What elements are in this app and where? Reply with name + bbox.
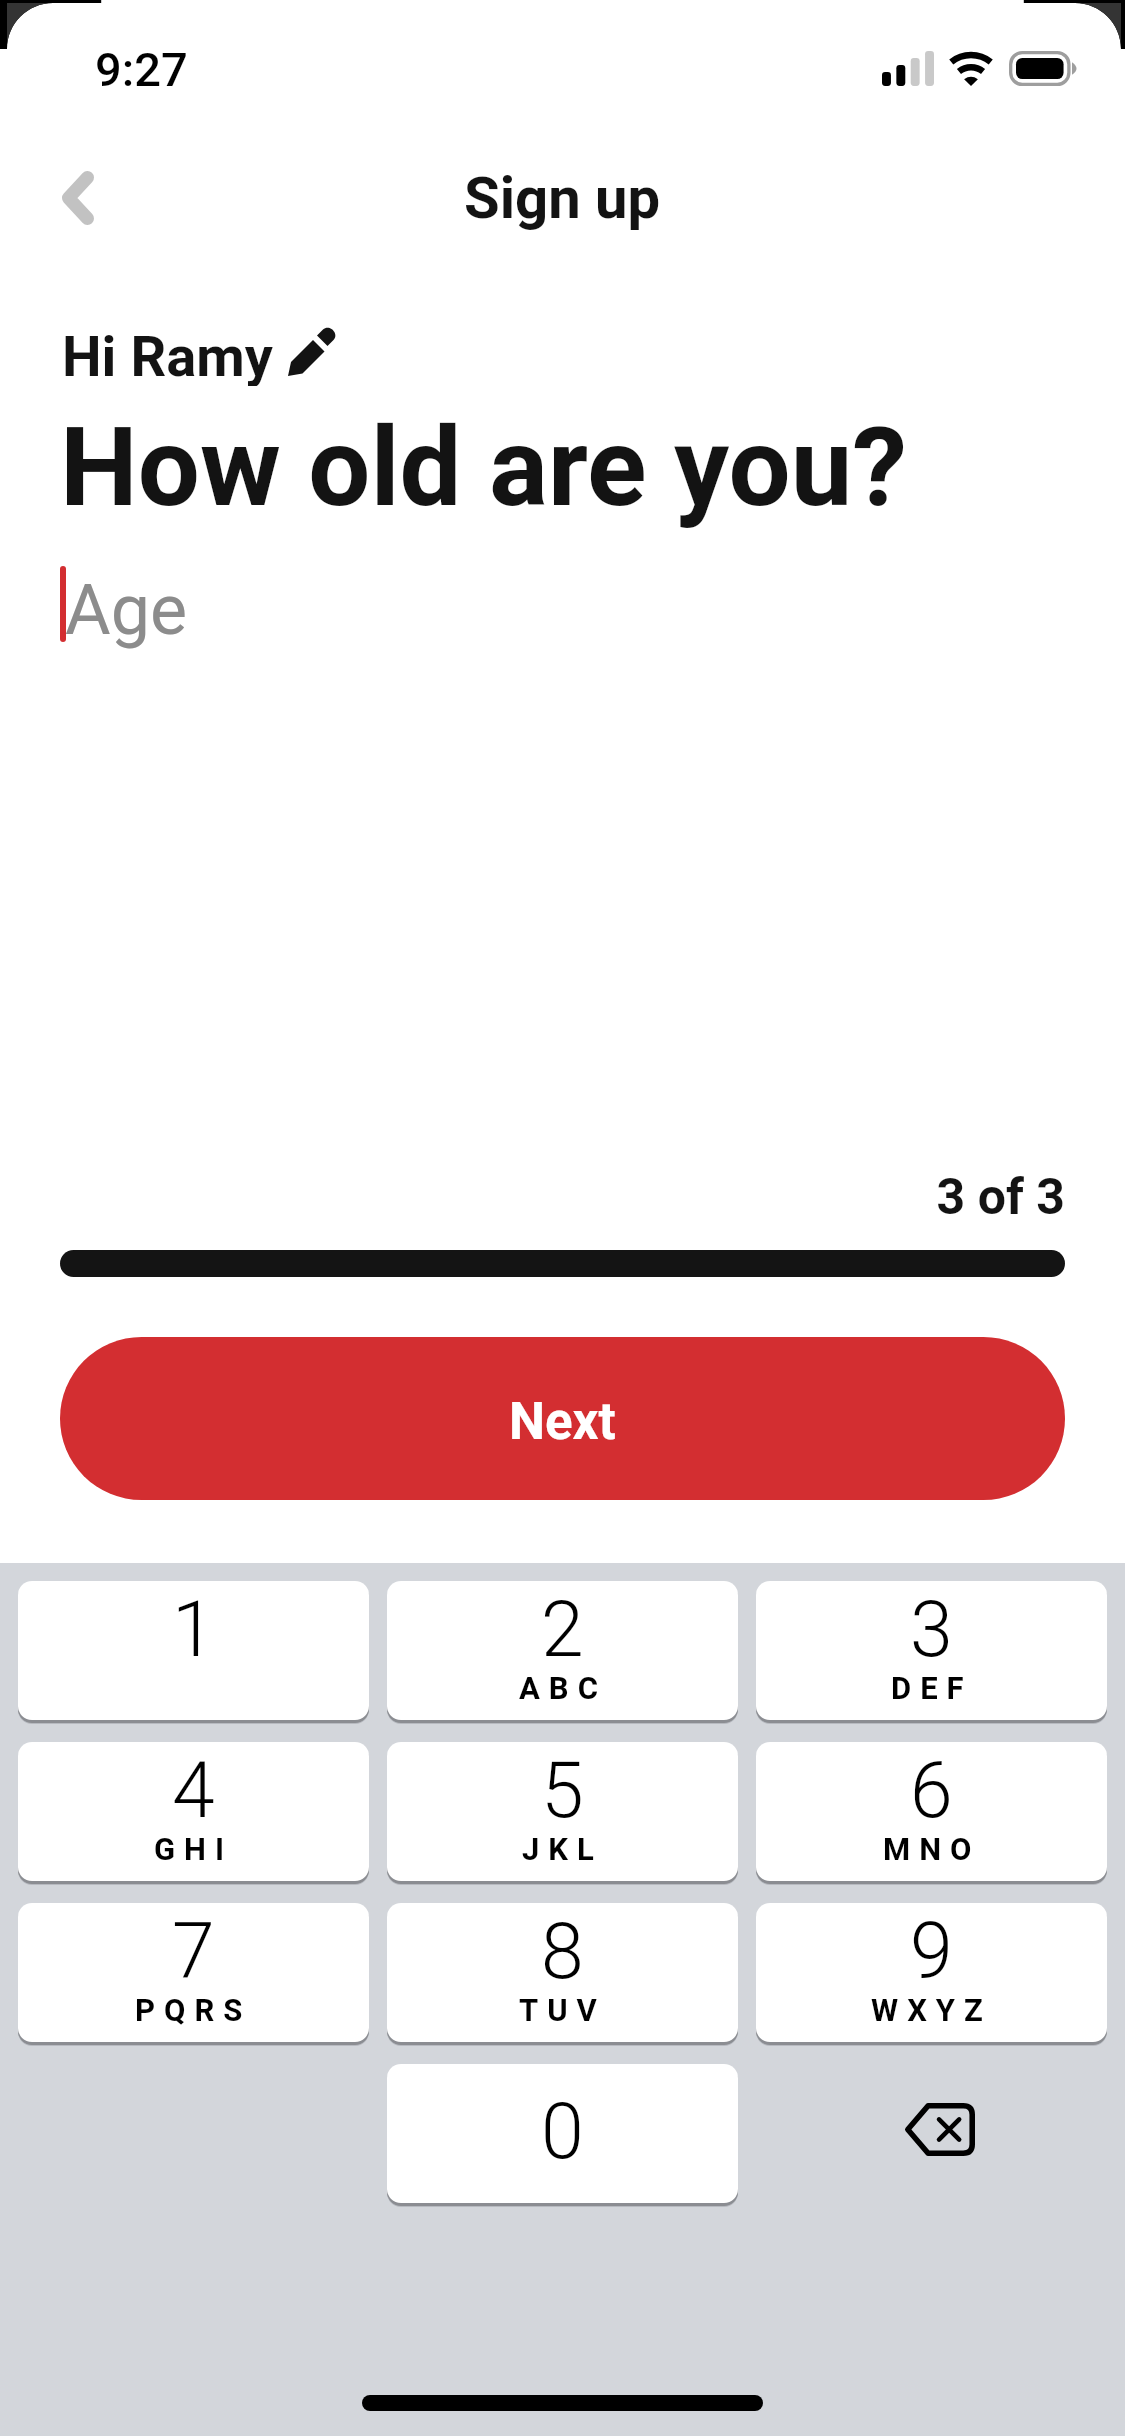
staticText: GHI: [154, 1831, 234, 1867]
button[interactable]: 4: [18, 1742, 369, 1881]
staticText: 5: [541, 1746, 584, 1836]
button[interactable]: 7: [18, 1903, 369, 2042]
staticText: JKL: [522, 1831, 603, 1867]
staticText: MNO: [883, 1831, 981, 1867]
staticText: How old are you?: [60, 403, 908, 532]
staticText: TUV: [519, 1992, 606, 2028]
button[interactable]: 1: [18, 1581, 369, 1720]
button[interactable]: Next: [60, 1337, 1065, 1500]
staticText: 7: [172, 1907, 215, 1997]
button[interactable]: 5: [387, 1742, 738, 1881]
button[interactable]: 6: [756, 1742, 1107, 1881]
staticText: 3 of 3: [60, 1168, 1065, 1227]
staticText: 0: [541, 2087, 584, 2177]
staticText: Next: [509, 1392, 616, 1452]
staticText: Sign up: [464, 164, 661, 232]
button[interactable]: Edit name: [285, 323, 341, 379]
button[interactable]: Back: [36, 156, 120, 240]
staticText: WXYZ: [871, 1992, 992, 2028]
staticText: PQRS: [135, 1992, 252, 2028]
button[interactable]: 0: [387, 2064, 738, 2203]
button[interactable]: 9: [756, 1903, 1107, 2042]
staticText: 9: [910, 1907, 953, 1997]
staticText: 4: [172, 1746, 215, 1836]
button[interactable]: 8: [387, 1903, 738, 2042]
button[interactable]: Age: [60, 558, 1065, 650]
staticText: 9:27: [95, 42, 188, 97]
button[interactable]: Delete: [756, 2064, 1107, 2203]
staticText: DEF: [891, 1670, 973, 1706]
button[interactable]: 3: [756, 1581, 1107, 1720]
button[interactable]: 2: [387, 1581, 738, 1720]
staticText: 6: [910, 1746, 953, 1836]
staticText: 1: [172, 1585, 215, 1675]
staticText: Age: [65, 569, 188, 651]
staticText: 2: [541, 1585, 584, 1675]
staticText: 3: [910, 1585, 953, 1675]
staticText: Hi Ramy: [62, 324, 273, 386]
staticText: 8: [541, 1907, 584, 1997]
staticText: ABC: [519, 1670, 607, 1706]
